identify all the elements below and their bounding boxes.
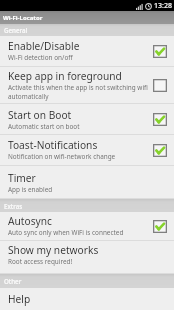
button[interactable]: Keep app in foreground bbox=[0, 67, 174, 104]
staticText: Notification on wifi-network change bbox=[8, 152, 116, 161]
button[interactable]: Help bbox=[0, 288, 174, 310]
staticText: Extras bbox=[4, 202, 23, 210]
staticText: Activate this when the app is not switch… bbox=[8, 83, 149, 101]
staticText: Keep app in foreground bbox=[8, 69, 122, 83]
staticText: Wi-Fi-Locator bbox=[3, 14, 43, 22]
staticText: Wi-Fi detection on/off bbox=[8, 53, 73, 62]
staticText: Auto sync only when WiFi is connected bbox=[8, 228, 124, 237]
staticText: General bbox=[4, 26, 28, 34]
button[interactable]: Toast-Notifications bbox=[0, 135, 174, 166]
button[interactable]: Enable/Disable bbox=[0, 36, 174, 67]
button[interactable]: Show my networks bbox=[0, 241, 174, 274]
staticText: Help bbox=[8, 292, 31, 306]
staticText: 13:28 bbox=[154, 1, 172, 11]
staticText: Automatic start on boot bbox=[8, 122, 80, 131]
staticText: Other bbox=[4, 277, 22, 285]
button[interactable]: Start on Boot bbox=[0, 104, 174, 135]
staticText: Toast-Notifications bbox=[8, 138, 98, 152]
staticText: Autosync bbox=[8, 214, 52, 228]
staticText: Show my networks bbox=[8, 243, 99, 257]
staticText: Start on Boot bbox=[8, 108, 72, 122]
button[interactable]: Autosync bbox=[0, 212, 174, 241]
button[interactable]: Timer bbox=[0, 166, 174, 199]
staticText: Root access required! bbox=[8, 257, 73, 266]
staticText: Enable/Disable bbox=[8, 39, 80, 53]
staticText: App is enabled bbox=[8, 185, 53, 194]
staticText: Timer bbox=[8, 171, 36, 185]
